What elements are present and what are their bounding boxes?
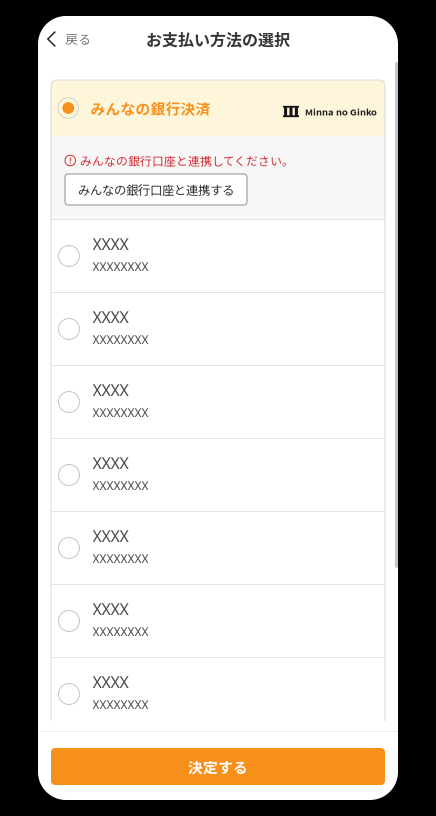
- button[interactable]: XXXX: [51, 439, 385, 511]
- staticText: XXXXXXXX: [92, 770, 148, 786]
- staticText: みんなの銀行口座と連携する: [78, 181, 234, 198]
- staticText: みんなの銀行決済: [90, 97, 210, 119]
- button[interactable]: XXXX: [51, 293, 385, 365]
- staticText: XXXXXXXX: [92, 697, 148, 713]
- staticText: XXXXXXXX: [92, 332, 148, 348]
- staticText: Minna no Ginko: [305, 105, 377, 118]
- staticText: XXXXXXXX: [92, 624, 148, 640]
- staticText: XXXX: [92, 744, 128, 766]
- button[interactable]: 決定する: [51, 748, 385, 785]
- button[interactable]: XXXX: [51, 658, 385, 730]
- button[interactable]: 戻る: [38, 22, 101, 56]
- staticText: XXXXXXXX: [92, 259, 148, 275]
- button[interactable]: XXXX: [51, 220, 385, 292]
- button[interactable]: みんなの銀行口座と連携する: [65, 174, 247, 205]
- staticText: XXXX: [92, 671, 128, 693]
- staticText: XXXX: [92, 233, 128, 255]
- staticText: お支払い方法の選択: [146, 27, 290, 51]
- staticText: 決定する: [188, 756, 248, 777]
- staticText: XXXX: [92, 525, 128, 547]
- staticText: 戻る: [65, 29, 91, 48]
- staticText: XXXX: [92, 598, 128, 620]
- staticText: XXXX: [92, 452, 128, 474]
- staticText: XXXX: [92, 379, 128, 401]
- staticText: XXXXXXXX: [92, 405, 148, 421]
- button[interactable]: XXXX: [51, 585, 385, 657]
- staticText: みんなの銀行口座と連携してください。: [80, 152, 294, 169]
- staticText: XXXXXXXX: [92, 551, 148, 567]
- button[interactable]: XXXX: [51, 512, 385, 584]
- staticText: XXXX: [92, 306, 128, 328]
- button[interactable]: みんなの銀行決済: [51, 80, 385, 136]
- button[interactable]: XXXX: [51, 731, 385, 803]
- button[interactable]: XXXX: [51, 366, 385, 438]
- staticText: XXXXXXXX: [92, 478, 148, 494]
